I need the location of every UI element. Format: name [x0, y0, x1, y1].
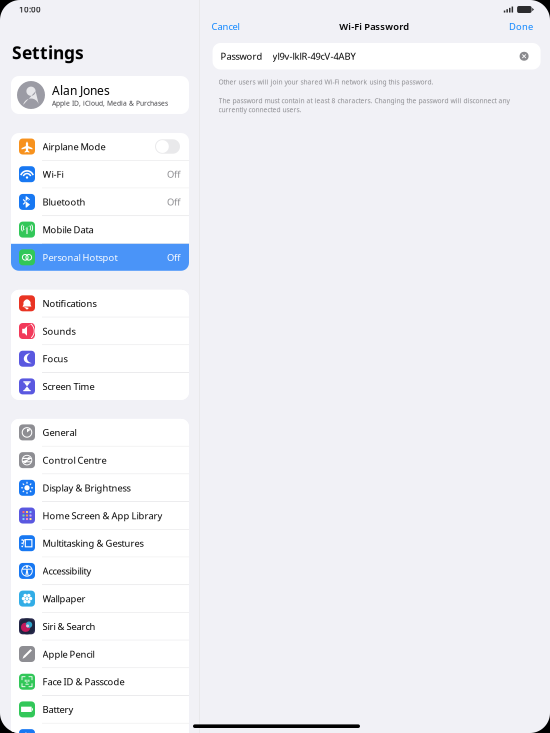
staticText: Apple ID, iCloud, Media & Purchases	[52, 99, 168, 108]
button[interactable]: Notifications	[11, 290, 189, 317]
staticText: Sounds	[42, 325, 75, 337]
staticText: Multitasking & Gestures	[42, 537, 143, 549]
button[interactable]: Siri & Search	[11, 613, 189, 640]
button[interactable]: Apple Pencil	[11, 640, 189, 667]
button[interactable]: Cancel	[212, 20, 240, 33]
staticText: Wallpaper	[42, 592, 85, 605]
button[interactable]: Accessibility	[11, 557, 189, 584]
button[interactable]: Wallpaper	[11, 585, 189, 612]
staticText: Accessibility	[42, 565, 91, 577]
staticText: Bluetooth	[42, 196, 85, 208]
staticText: General	[42, 426, 76, 439]
staticText: Notifications	[42, 297, 96, 309]
button[interactable]: Screen Time	[11, 373, 189, 400]
staticText: The password must contain at least 8 cha…	[219, 96, 510, 114]
button[interactable]: Alan Jones	[11, 76, 189, 114]
staticText: Password	[221, 50, 263, 62]
staticText: Battery	[42, 703, 73, 716]
staticText: Screen Time	[42, 380, 94, 393]
staticText: Alan Jones	[52, 82, 110, 98]
button[interactable]: Face ID & Passcode	[11, 668, 189, 695]
staticText: Off	[167, 251, 180, 263]
button[interactable]: Display & Brightness	[11, 474, 189, 501]
staticText: Siri & Search	[42, 620, 95, 632]
button[interactable]: Battery	[11, 696, 189, 723]
button[interactable]: Multitasking & Gestures	[11, 530, 189, 557]
button[interactable]: Control Centre	[11, 447, 189, 474]
button[interactable]: Airplane Mode	[155, 139, 180, 154]
button[interactable]: Home Screen & App Library	[11, 502, 189, 529]
staticText: Wi-Fi Password	[339, 20, 409, 33]
staticText: 10:00	[19, 4, 41, 15]
button[interactable]: Wi-Fi	[11, 161, 189, 188]
button[interactable]: Bluetooth	[11, 188, 189, 215]
staticText: Off	[167, 168, 180, 180]
button[interactable]: Privacy & Security	[11, 724, 189, 733]
staticText: yl9v-lklR-49cV-4ABY	[273, 50, 356, 62]
staticText: Control Centre	[42, 454, 106, 466]
button[interactable]: Sounds	[11, 317, 189, 344]
staticText: Home Screen & App Library	[42, 509, 162, 522]
button[interactable]: General	[11, 419, 189, 446]
staticText: Airplane Mode	[42, 140, 105, 153]
staticText: Personal Hotspot	[42, 251, 117, 263]
staticText: Focus	[42, 352, 67, 365]
staticText: Face ID & Passcode	[42, 675, 124, 688]
staticText: Wi-Fi	[42, 168, 63, 180]
staticText: Display & Brightness	[42, 482, 130, 494]
staticText: Cancel	[212, 20, 240, 33]
staticText: Apple Pencil	[42, 648, 94, 660]
button[interactable]: Focus	[11, 345, 189, 372]
button[interactable]: Done	[509, 20, 533, 33]
button[interactable]: Clear text	[520, 52, 529, 61]
button[interactable]: Personal Hotspot	[11, 244, 189, 271]
staticText: Done	[509, 20, 533, 33]
staticText: Off	[167, 196, 180, 208]
staticText: Other users will join your shared Wi-Fi …	[219, 77, 434, 86]
button[interactable]: Mobile Data	[11, 216, 189, 243]
staticText: Mobile Data	[42, 223, 93, 236]
staticText: Settings	[12, 41, 84, 64]
